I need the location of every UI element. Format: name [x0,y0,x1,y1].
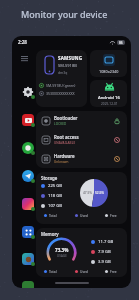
staticText: 3.9 GB [98,259,111,265]
button[interactable]: Menu [19,53,30,64]
staticText: 118 GB [48,193,63,199]
button[interactable]: Storage [36,172,127,224]
button[interactable]: WhatsApp [21,141,37,157]
button[interactable]: YouTube [21,113,37,129]
staticText: 86 [119,41,123,45]
staticText: Root access [54,134,79,140]
staticText: LOCKED [54,122,67,126]
button[interactable]: Instagram [21,197,37,213]
button[interactable]: Telegram [21,169,37,185]
staticText: SM-S918U (green) [46,83,76,88]
staticText: Android 16 [98,95,120,101]
staticText: Total [49,269,57,273]
button[interactable]: SAMSUNG [36,50,87,107]
staticText: 353XXXXXXXXXXX [46,91,75,96]
staticText: 7.9 GB [98,249,111,255]
staticText: Storage [41,175,58,181]
button[interactable]: Spotify [21,280,37,288]
staticText: Hardware [54,153,75,159]
staticText: 225 GB [48,183,63,189]
staticText: SM-S918B [58,63,77,68]
staticText: 11.7 GB [98,239,114,245]
staticText: Total [49,213,57,217]
staticText: 2:28 [18,39,27,45]
staticText: Used [80,269,88,273]
staticText: UNAVAILABLE [54,141,76,145]
staticText: USAGE [57,254,67,258]
staticText: 107 GB [48,203,63,209]
button[interactable]: Root access [36,130,127,149]
staticText: Free [110,213,117,217]
staticText: 1080x2340 [99,69,119,74]
staticText: dm3q [58,70,68,75]
staticText: Used [80,213,88,217]
staticText: Free [110,269,117,273]
button[interactable]: Apps [21,225,37,241]
button[interactable]: Hardware [36,149,127,168]
staticText: Bootloader [54,115,78,121]
button[interactable]: Bootloader [36,111,127,130]
button[interactable]: Settings [21,85,37,101]
staticText: 52.5% [95,191,105,195]
staticText: 47.5% [83,191,93,195]
staticText: SAMSUNG [58,55,83,61]
staticText: 73.3% [55,247,69,253]
button[interactable]: 1080x2340 [90,50,127,77]
button[interactable]: Android 16 [90,80,127,107]
staticText: 2025-12-01 [101,102,118,106]
staticText: Monitor your device [21,8,108,20]
button[interactable]: Memory [36,228,127,277]
staticText: Unknown [54,160,69,164]
button[interactable]: Photos [21,252,37,268]
staticText: Memory [41,231,59,237]
